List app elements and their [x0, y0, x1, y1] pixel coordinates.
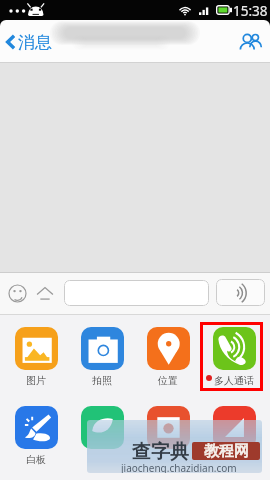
button[interactable]: More options: [31, 279, 59, 307]
button[interactable]: 位置: [135, 327, 201, 389]
button[interactable]: Voice message: [216, 279, 265, 306]
staticText: 多人通话: [214, 374, 254, 387]
button[interactable]: [135, 406, 201, 468]
staticText: 图片: [26, 374, 46, 387]
button[interactable]: Contacts: [234, 26, 266, 58]
staticText: 位置: [158, 374, 178, 387]
button[interactable]: [201, 406, 267, 468]
staticText: 白板: [26, 453, 46, 466]
button[interactable]: 拍照: [69, 327, 135, 389]
staticText: 查字典: [132, 440, 189, 464]
button[interactable]: 图片: [3, 327, 69, 389]
button[interactable]: 多人通话: [201, 327, 267, 389]
button[interactable]: Message input: [64, 280, 209, 306]
staticText: 15:38: [233, 2, 268, 20]
button[interactable]: [69, 406, 135, 468]
staticText: 消息: [18, 32, 52, 53]
button[interactable]: 白板: [3, 406, 69, 468]
staticText: 拍照: [92, 374, 112, 387]
button[interactable]: Emoji: [3, 279, 31, 307]
button[interactable]: 消息: [4, 31, 52, 53]
staticText: 教程网: [204, 442, 249, 460]
staticText: jiaocheng.chazidian.com: [121, 461, 237, 473]
